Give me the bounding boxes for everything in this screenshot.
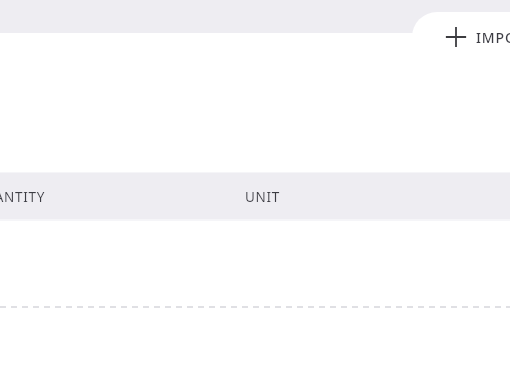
button[interactable]: Import	[412, 12, 510, 62]
staticText: UNIT	[245, 188, 281, 206]
staticText: IMPORT	[476, 28, 510, 47]
staticText: QUANTITY	[0, 188, 45, 206]
